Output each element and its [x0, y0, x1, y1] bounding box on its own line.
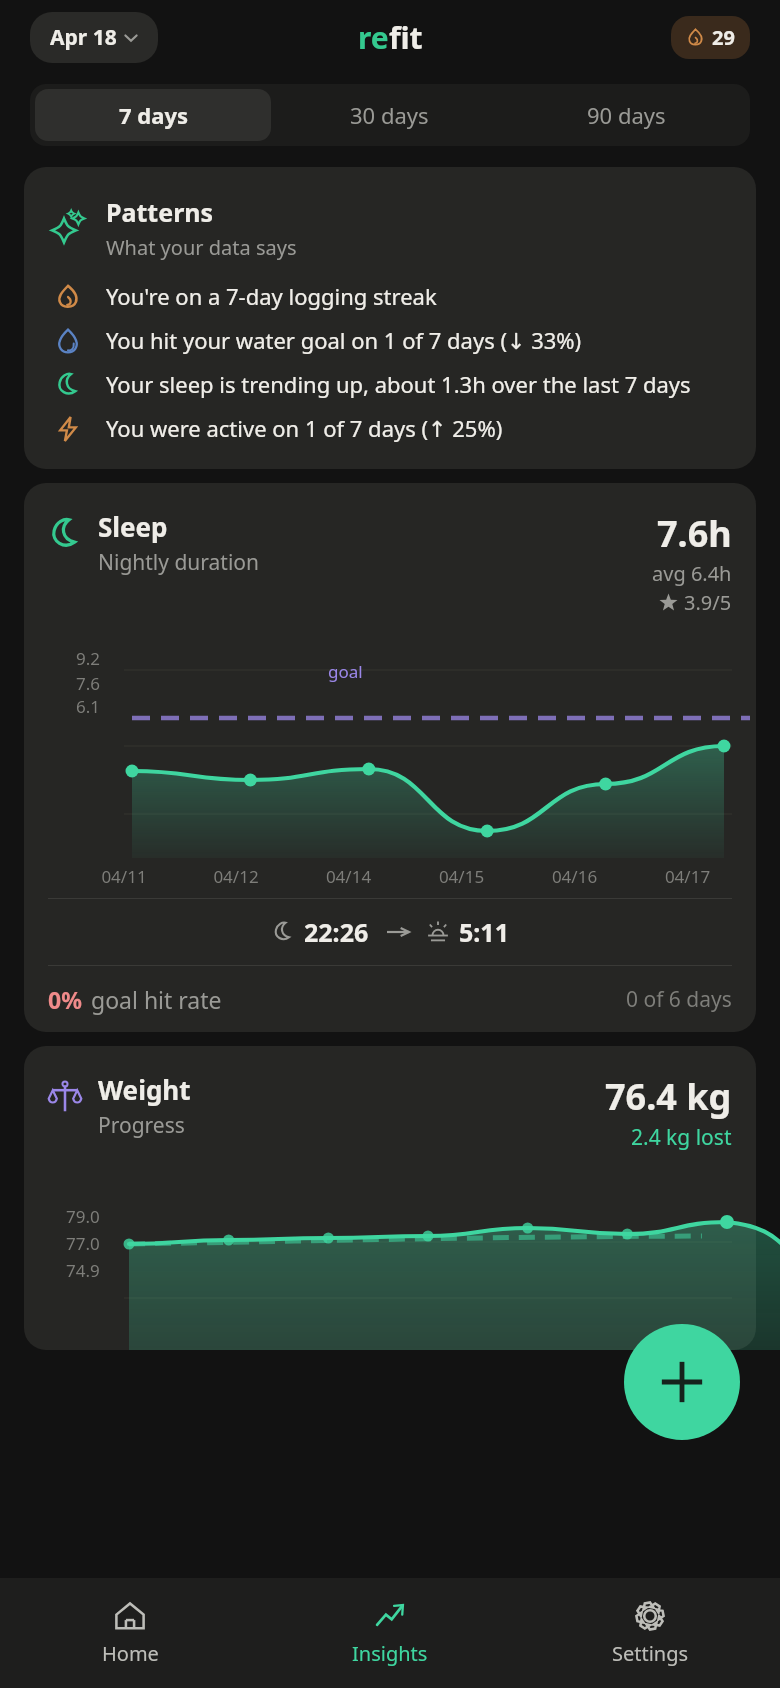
staticText: 04/16: [518, 865, 631, 888]
button[interactable]: Insights: [260, 1578, 520, 1688]
staticText: Insights: [352, 1640, 428, 1667]
button[interactable]: Home: [0, 1578, 260, 1688]
button[interactable]: Sleep: [24, 483, 756, 1032]
staticText: Nightly duration: [98, 548, 260, 577]
staticText: Sleep: [98, 509, 168, 544]
staticText: 90 days: [587, 100, 666, 130]
staticText: 04/14: [292, 865, 405, 888]
staticText: What your data says: [106, 234, 297, 261]
staticText: 29: [712, 24, 735, 51]
staticText: goal hit rate: [91, 984, 222, 1015]
staticText: avg 6.4h: [652, 560, 732, 587]
staticText: Progress: [98, 1111, 185, 1140]
staticText: Your sleep is trending up, about 1.3h ov…: [106, 369, 691, 399]
staticText: 04/17: [631, 865, 744, 888]
staticText: Settings: [612, 1640, 689, 1667]
staticText: 7.6h: [657, 509, 732, 558]
staticText: 7 days: [119, 100, 188, 130]
staticText: 22:26: [304, 915, 369, 949]
staticText: 6.1: [76, 695, 101, 718]
staticText: 04/15: [405, 865, 518, 888]
staticText: 9.2: [76, 647, 101, 670]
button[interactable]: Weight: [24, 1046, 756, 1350]
staticText: 7.6: [76, 672, 101, 695]
staticText: You're on a 7-day logging streak: [106, 281, 437, 311]
staticText: 30 days: [350, 100, 429, 130]
button[interactable]: 30 days: [271, 89, 508, 141]
staticText: 74.9: [66, 1259, 100, 1282]
button[interactable]: Add entry: [624, 1324, 740, 1440]
staticText: 0%: [48, 984, 82, 1015]
button[interactable]: Settings: [520, 1578, 780, 1688]
button[interactable]: Patterns: [24, 167, 756, 469]
staticText: goal: [328, 660, 363, 683]
button[interactable]: 29: [671, 16, 750, 59]
staticText: 3.9/5: [684, 589, 732, 616]
staticText: Apr 18: [50, 23, 117, 52]
staticText: You hit your water goal on 1 of 7 days (…: [106, 325, 582, 355]
staticText: 04/12: [180, 865, 292, 888]
staticText: fit: [389, 17, 423, 58]
staticText: 04/11: [68, 865, 180, 888]
staticText: 79.0: [66, 1205, 100, 1228]
button[interactable]: 90 days: [508, 89, 745, 141]
staticText: 5:11: [459, 915, 509, 949]
staticText: Patterns: [106, 195, 214, 229]
staticText: Weight: [98, 1072, 191, 1107]
staticText: Home: [102, 1640, 159, 1667]
staticText: 77.0: [66, 1232, 100, 1255]
staticText: You were active on 1 of 7 days (↑ 25%): [106, 413, 503, 443]
staticText: 76.4 kg: [605, 1072, 732, 1121]
staticText: re: [358, 17, 389, 58]
button[interactable]: 7 days: [35, 89, 271, 141]
button[interactable]: Apr 18: [30, 12, 158, 63]
staticText: 2.4 kg lost: [631, 1123, 732, 1152]
staticText: 0 of 6 days: [626, 985, 732, 1014]
